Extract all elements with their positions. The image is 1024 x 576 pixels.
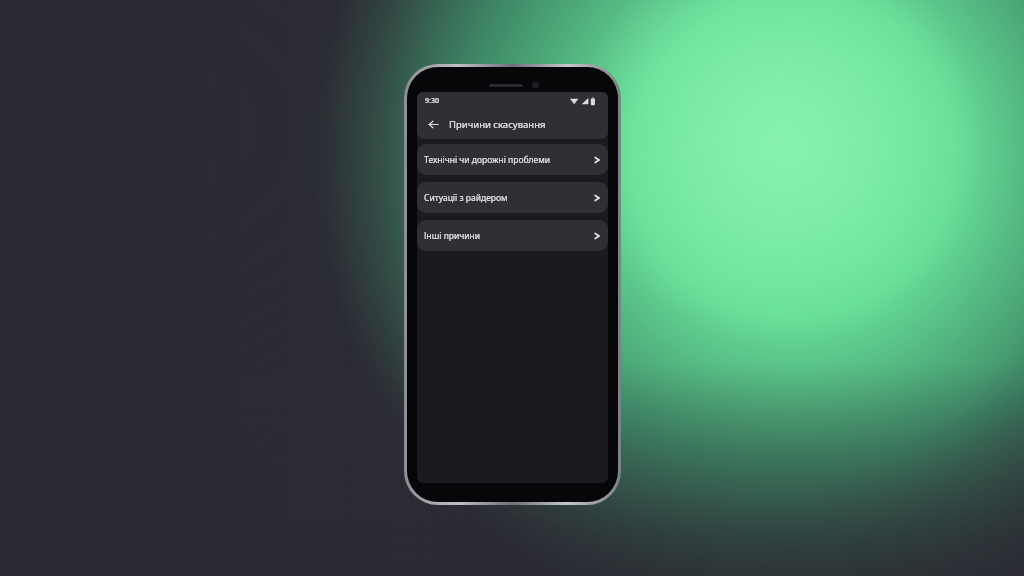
button[interactable]: Ситуації з райдером — [417, 182, 608, 213]
button[interactable]: Інші причини — [417, 220, 608, 251]
button[interactable]: Back — [422, 113, 444, 135]
staticText: Ситуації з райдером — [424, 192, 594, 204]
staticText: Технічні чи дорожні проблеми — [424, 154, 594, 166]
staticText: Причини скасування — [449, 118, 546, 131]
button[interactable]: Технічні чи дорожні проблеми — [417, 144, 608, 175]
staticText: 9:30 — [425, 96, 439, 106]
staticText: Інші причини — [424, 230, 594, 242]
button[interactable]: Back — [417, 109, 608, 139]
